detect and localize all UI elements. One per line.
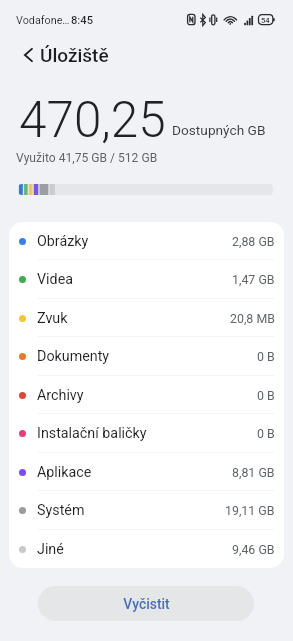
staticText: 470,25 xyxy=(19,91,166,149)
button[interactable]: Vyčistit xyxy=(38,586,254,621)
button[interactable]: Obrázky xyxy=(9,222,284,260)
button[interactable]: Jiné xyxy=(9,530,284,568)
staticText: 0 B xyxy=(257,388,275,403)
button[interactable]: Archivy xyxy=(9,376,284,414)
staticText: Zvuk xyxy=(37,310,68,327)
button[interactable]: Instalační baličky xyxy=(9,414,284,453)
staticText: Jiné xyxy=(37,541,64,558)
staticText: 8:45 xyxy=(71,14,94,27)
staticText: Systém xyxy=(37,502,85,519)
staticText: Úložiště xyxy=(40,44,109,66)
staticText: Instalační baličky xyxy=(37,425,147,442)
staticText: Vyčistit xyxy=(123,596,170,612)
button[interactable]: Videa xyxy=(9,260,284,299)
staticText: 9,46 GB xyxy=(232,542,275,557)
button[interactable]: Aplikace xyxy=(9,453,284,491)
button[interactable]: Systém xyxy=(9,491,284,530)
staticText: 19,11 GB xyxy=(225,503,275,518)
button[interactable]: Zvuk xyxy=(9,299,284,337)
staticText: Archivy xyxy=(37,387,84,404)
staticText: 54 xyxy=(261,16,270,25)
staticText: Vodafone… xyxy=(16,14,70,27)
staticText: 0 B xyxy=(257,349,275,364)
staticText: Aplikace xyxy=(37,464,92,481)
staticText: Dostupných GB xyxy=(172,122,266,138)
staticText: 1,47 GB xyxy=(232,272,275,287)
staticText: Využito 41,75 GB / 512 GB xyxy=(16,151,158,165)
button[interactable]: Back xyxy=(14,41,42,69)
staticText: 0 B xyxy=(257,426,275,441)
button[interactable]: Dokumenty xyxy=(9,337,284,376)
staticText: Obrázky xyxy=(37,233,89,250)
staticText: 2,88 GB xyxy=(232,234,275,249)
staticText: Videa xyxy=(37,271,74,288)
staticText: 20,8 MB xyxy=(230,311,275,326)
staticText: Dokumenty xyxy=(37,348,110,365)
staticText: 8,81 GB xyxy=(232,465,275,480)
